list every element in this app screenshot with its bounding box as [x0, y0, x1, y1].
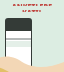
staticText: KATIL — [22, 6, 43, 12]
staticText: ANKETLERE — [12, 0, 52, 6]
